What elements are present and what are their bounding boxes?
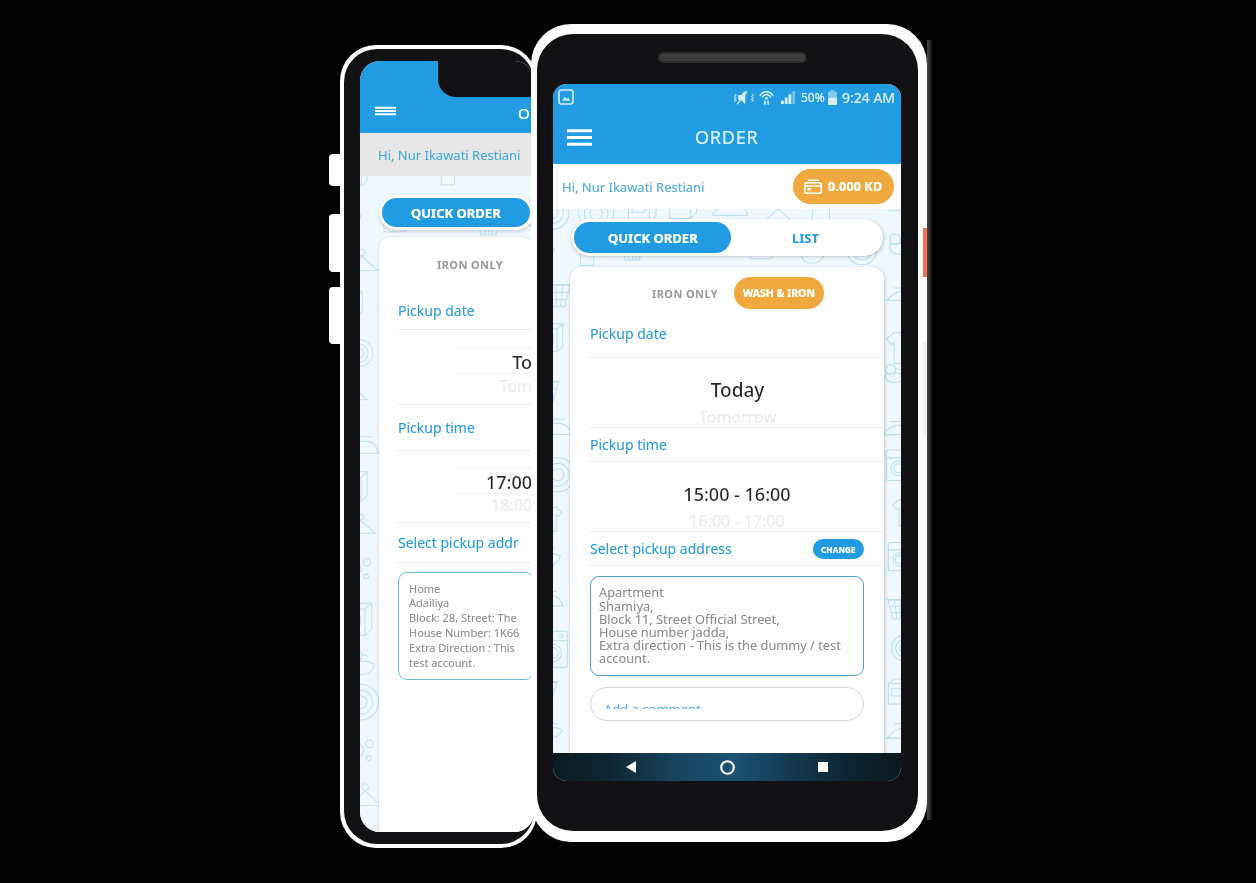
button[interactable]: Apartment Shamiya, Block 11, Street Offi… — [590, 576, 864, 676]
staticText: QUICK ORDER — [608, 229, 698, 247]
button[interactable]: Home — [709, 753, 745, 781]
staticText: 16:00 - 17:00 — [590, 510, 884, 531]
staticText: Today — [591, 377, 884, 403]
staticText: Tom — [379, 375, 532, 397]
button[interactable]: IRON ONLY — [647, 281, 723, 306]
button[interactable]: 17:00 — [379, 451, 534, 522]
button[interactable]: Back — [613, 753, 649, 781]
staticText: QUICK ORDER — [411, 204, 501, 222]
staticText: Home Adailiya Block: 28, Street: The Hou… — [409, 581, 520, 671]
staticText: CHANGE — [821, 544, 856, 555]
staticText: 50% — [801, 89, 825, 105]
button[interactable]: To — [379, 330, 534, 404]
button[interactable]: 15:00 - 16:00 — [570, 462, 884, 531]
button[interactable]: 0.000 KD — [793, 169, 894, 204]
staticText: Hi, Nur Ikawati Restiani — [378, 146, 521, 164]
staticText: Pickup time — [590, 435, 667, 454]
button[interactable]: QUICK ORDER — [574, 222, 731, 253]
button[interactable]: Recent apps — [805, 753, 841, 781]
staticText: IRON ONLY — [437, 257, 503, 272]
staticText: 17:00 — [379, 470, 532, 495]
button[interactable]: Today — [570, 358, 884, 427]
staticText: Order — [518, 103, 534, 123]
staticText: Tomorrow — [591, 406, 884, 427]
staticText: Pickup date — [590, 324, 667, 343]
staticText: 9:24 AM — [842, 88, 896, 107]
staticText: Add a comment — [604, 700, 701, 709]
staticText: 0.000 KD — [828, 178, 883, 195]
button[interactable]: Open navigation menu — [559, 117, 599, 157]
staticText: To — [379, 350, 532, 375]
staticText: LIST — [792, 229, 819, 247]
button[interactable]: Open navigation menu — [375, 105, 396, 117]
staticText: Pickup date — [398, 301, 475, 320]
staticText: Hi, Nur Ikawati Restiani — [562, 178, 705, 196]
staticText: WASH & IRON — [743, 286, 815, 300]
button[interactable]: CHANGE — [813, 539, 864, 559]
staticText: ORDER — [695, 125, 759, 150]
staticText: Apartment Shamiya, Block 11, Street Offi… — [599, 583, 841, 666]
staticText: Pickup time — [398, 418, 475, 437]
staticText: IRON ONLY — [652, 286, 718, 301]
staticText: Select pickup address — [590, 539, 732, 558]
button[interactable]: WASH & IRON — [734, 277, 824, 309]
button[interactable]: QUICK ORDER — [382, 198, 530, 227]
button[interactable]: Add a comment — [590, 687, 864, 721]
staticText: Select pickup addr — [398, 533, 519, 552]
button[interactable]: LIST — [731, 222, 880, 253]
staticText: 15:00 - 16:00 — [590, 482, 884, 507]
staticText: 18:00 — [379, 494, 532, 516]
